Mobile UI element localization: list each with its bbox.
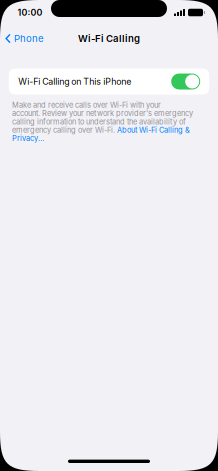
staticText: Privacy… xyxy=(12,134,44,143)
button[interactable]: About Wi-Fi Calling & Privacy xyxy=(12,100,202,143)
staticText: calling information to understand the av… xyxy=(12,117,186,126)
staticText: Wi-Fi Calling on This iPhone xyxy=(18,76,131,87)
staticText: Phone xyxy=(14,33,44,44)
staticText: emergency calling over Wi-Fi. About Wi-F… xyxy=(12,125,190,134)
staticText: 10:00 xyxy=(17,7,42,18)
button[interactable]: Phone xyxy=(0,29,44,48)
staticText: account. Review your network provider's … xyxy=(12,109,193,118)
staticText: Wi-Fi Calling xyxy=(78,33,140,44)
button[interactable]: Wi-Fi Calling on This iPhone xyxy=(171,73,200,89)
staticText: Make and receive calls over Wi-Fi with y… xyxy=(12,100,161,109)
